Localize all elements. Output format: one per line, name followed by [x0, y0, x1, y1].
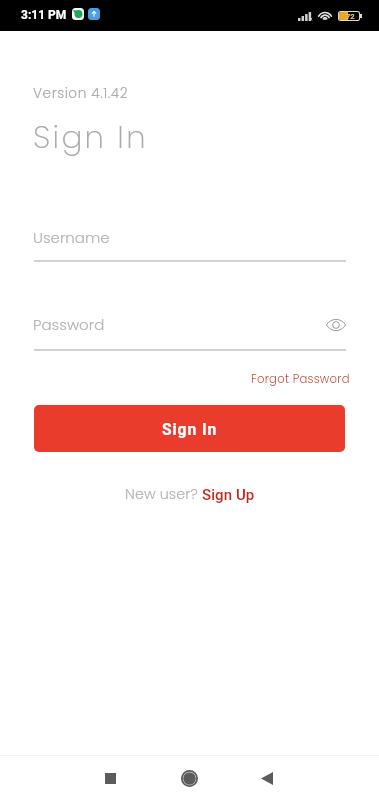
staticText: Version 4.1.42	[33, 84, 129, 103]
staticText: Sign In	[33, 115, 148, 158]
button[interactable]: Recents	[87, 756, 134, 800]
button[interactable]: Sign In	[34, 405, 345, 452]
staticText: Forgot Password	[251, 371, 350, 387]
button[interactable]: Home	[166, 756, 213, 800]
staticText: Sign In	[162, 420, 218, 438]
staticText: Password	[33, 314, 105, 335]
button[interactable]: Show password	[324, 312, 348, 337]
staticText: Username	[33, 227, 110, 248]
button[interactable]: Password	[34, 309, 346, 351]
button[interactable]: Back	[243, 756, 290, 800]
button[interactable]: Username	[34, 222, 346, 262]
staticText: Sign Up	[202, 486, 255, 504]
staticText: New user?	[125, 484, 202, 504]
staticText: 3:11 PM	[21, 8, 67, 22]
staticText: 72	[346, 12, 355, 20]
button[interactable]: Forgot Password	[251, 371, 350, 387]
button[interactable]: Sign Up	[202, 486, 255, 504]
